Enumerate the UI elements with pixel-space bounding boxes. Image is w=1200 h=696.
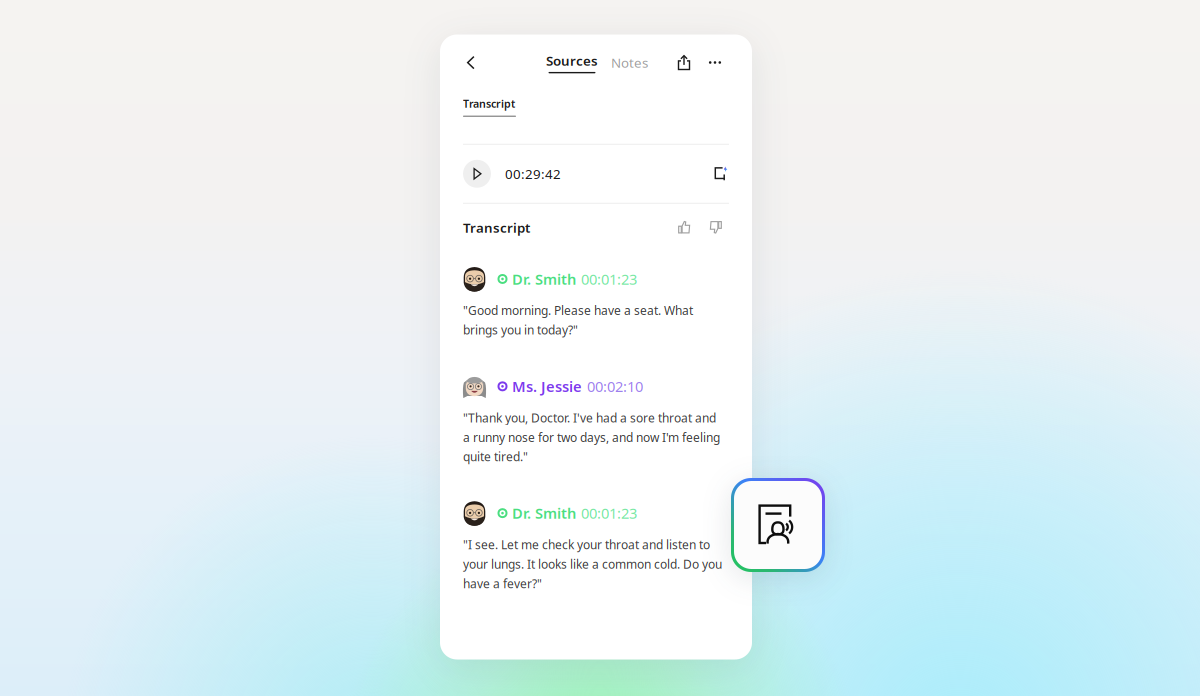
staticText: a runny nose for two days, and now I'm f… <box>463 429 720 445</box>
button[interactable]: Good response <box>678 221 691 235</box>
staticText: Transcript <box>463 219 530 236</box>
staticText: Sources <box>546 52 598 69</box>
staticText: Dr. Smith <box>512 269 576 289</box>
staticText: have a fever?" <box>463 575 542 591</box>
button[interactable]: Edit clip <box>714 166 729 181</box>
staticText: 00:01:23 <box>581 503 637 523</box>
button[interactable]: More options <box>704 48 726 76</box>
staticText: Transcript <box>463 96 515 111</box>
staticText: quite tired." <box>463 449 528 465</box>
staticText: 00:01:23 <box>581 269 637 289</box>
staticText: your lungs. It looks like a common cold.… <box>463 556 722 572</box>
staticText: 00:29:42 <box>505 165 561 183</box>
staticText: 00:02:10 <box>587 377 643 396</box>
button[interactable]: Notes <box>598 48 648 76</box>
button[interactable]: Bad response <box>691 221 722 235</box>
button[interactable]: Play <box>463 160 491 188</box>
staticText: "Good morning. Please have a seat. What <box>463 302 693 318</box>
button[interactable]: Back <box>458 48 484 76</box>
staticText: "Thank you, Doctor. I've had a sore thro… <box>463 410 716 426</box>
staticText: brings you in today?" <box>463 322 578 338</box>
button[interactable]: Sources <box>508 48 598 76</box>
staticText: "I see. Let me check your throat and lis… <box>463 537 710 552</box>
staticText: Ms. Jessie <box>512 377 582 396</box>
button[interactable]: Share <box>672 48 696 76</box>
button[interactable]: Transcript <box>463 96 516 117</box>
staticText: Dr. Smith <box>512 503 576 523</box>
staticText: Notes <box>611 54 648 71</box>
